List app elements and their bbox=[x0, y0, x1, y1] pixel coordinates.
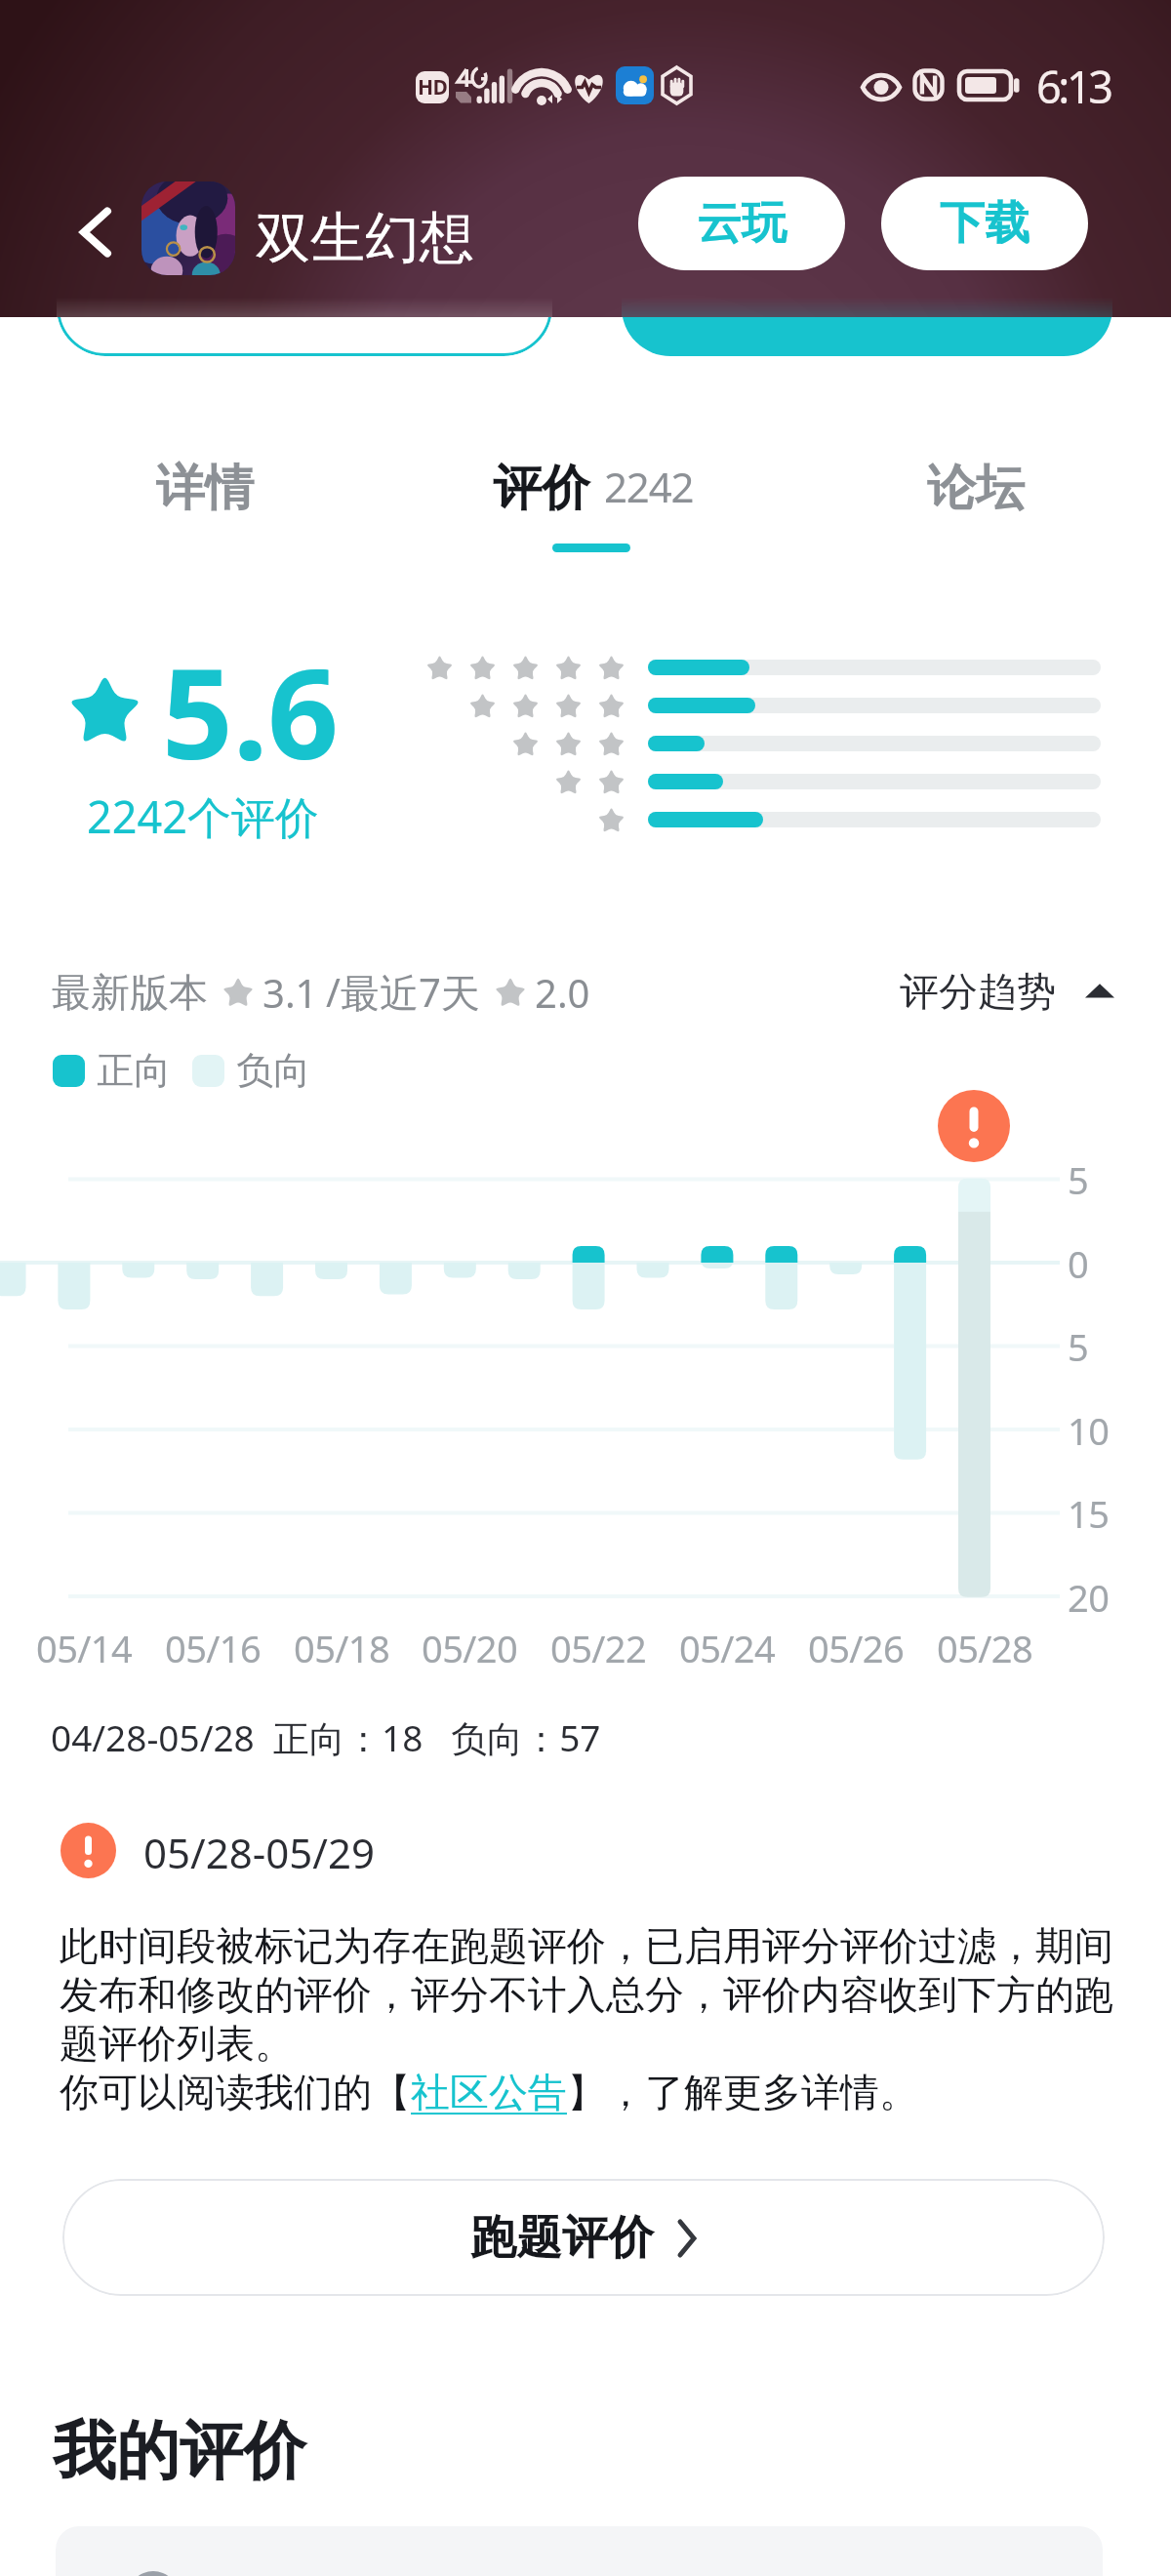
staticText: /最近7天 bbox=[326, 965, 480, 1019]
staticText: 2.0 bbox=[535, 966, 590, 1019]
staticText: 跑题评价 bbox=[470, 2209, 654, 2267]
staticText: 05/18 bbox=[294, 1623, 390, 1673]
staticText: 我的评价 bbox=[53, 2411, 306, 2491]
staticText: 15 bbox=[1068, 1488, 1110, 1539]
staticText: 题评价列表。 bbox=[60, 2019, 294, 2068]
staticText: 你可以阅读我们的【 bbox=[60, 2068, 411, 2116]
staticText: 最新版本 bbox=[52, 968, 208, 1017]
button[interactable]: App icon bbox=[141, 181, 235, 275]
staticText: 下载 bbox=[940, 195, 1030, 252]
button[interactable]: 预约 bbox=[57, 259, 552, 356]
staticText: 云玩 bbox=[697, 195, 787, 252]
button[interactable]: 跑题评价 bbox=[62, 2179, 1105, 2296]
staticText: 0 bbox=[1068, 1238, 1089, 1289]
staticText: 10 bbox=[1068, 1405, 1110, 1456]
button[interactable]: 评分趋势 bbox=[900, 967, 1114, 1016]
staticText: 2242个评价 bbox=[87, 786, 319, 846]
staticText: 双生幻想 bbox=[256, 204, 474, 273]
staticText: 05/22 bbox=[550, 1623, 647, 1673]
staticText: 评分趋势 bbox=[900, 967, 1056, 1016]
button[interactable]: 社区公告 bbox=[411, 2068, 567, 2116]
staticText: 20 bbox=[1068, 1572, 1110, 1623]
staticText: 05/20 bbox=[422, 1623, 518, 1673]
staticText: 05/26 bbox=[808, 1623, 905, 1673]
staticText: 04/28-05/28 正向：18 负向：57 bbox=[51, 1712, 601, 1762]
button[interactable]: 评价 bbox=[418, 458, 769, 565]
button[interactable]: 论坛 bbox=[834, 458, 1117, 565]
staticText: 05/16 bbox=[165, 1623, 262, 1673]
staticText: 评价 bbox=[493, 458, 590, 519]
staticText: 05/28 bbox=[937, 1623, 1033, 1673]
button[interactable]: 云玩 bbox=[638, 177, 845, 270]
staticText: 05/24 bbox=[679, 1623, 776, 1673]
staticText: 】，了解更多详情。 bbox=[567, 2068, 918, 2116]
staticText: 05/28-05/29 bbox=[143, 1825, 375, 1880]
button[interactable]: 下载 bbox=[622, 259, 1112, 356]
staticText: 发布和修改的评价，评分不计入总分，评价内容收到下方的跑 bbox=[60, 1970, 1113, 2019]
staticText: 3.1 bbox=[262, 966, 318, 1019]
button[interactable]: 下载 bbox=[881, 177, 1088, 270]
staticText: 5 bbox=[1068, 1154, 1089, 1205]
staticText: 2242 bbox=[604, 459, 694, 514]
staticText: 此时间段被标记为存在跑题评价，已启用评分评价过滤，期间 bbox=[60, 1921, 1113, 1970]
staticText: 负向 bbox=[236, 1047, 310, 1094]
staticText: 05/14 bbox=[36, 1623, 133, 1673]
staticText: 正向 bbox=[97, 1047, 171, 1094]
staticText: 论坛 bbox=[927, 458, 1025, 519]
staticText: 6:13 bbox=[1036, 57, 1110, 116]
button[interactable]: Back bbox=[61, 197, 131, 267]
staticText: 5 bbox=[1068, 1321, 1089, 1372]
button[interactable]: Warning bbox=[938, 1090, 1010, 1162]
staticText: 5.6 bbox=[162, 626, 339, 795]
staticText: HD bbox=[418, 73, 448, 101]
button[interactable]: 详情 bbox=[63, 458, 346, 565]
staticText: 详情 bbox=[156, 458, 254, 519]
